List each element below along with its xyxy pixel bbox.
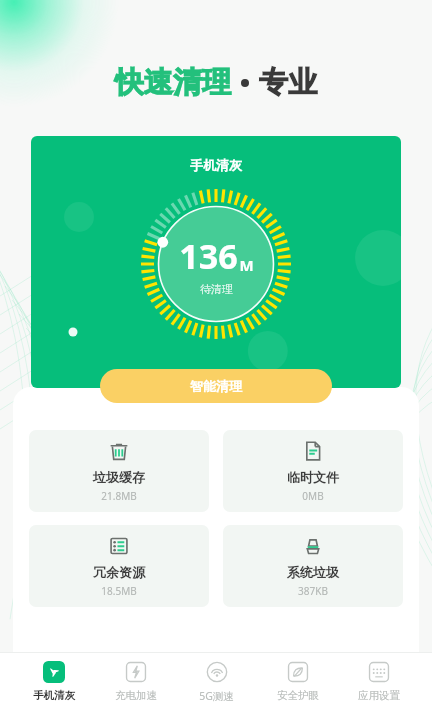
button[interactable]: 5G测速 — [176, 653, 257, 703]
staticText: 387KB — [298, 584, 328, 598]
staticText: M — [239, 255, 254, 275]
button[interactable]: 垃圾缓存 — [29, 430, 209, 512]
other: 充电加速 — [125, 661, 147, 683]
staticText: 21.8MB — [101, 489, 137, 503]
staticText: 专业 — [259, 64, 317, 101]
staticText: 垃圾缓存 — [93, 469, 145, 485]
staticText: 应用设置 — [358, 689, 400, 702]
staticText: 0MB — [302, 489, 324, 503]
staticText: 系统垃圾 — [287, 564, 339, 580]
staticText: 充电加速 — [115, 689, 157, 702]
staticText: 智能清理 — [190, 378, 242, 394]
button[interactable]: 智能清理 — [100, 369, 332, 403]
button[interactable]: 冗余资源 — [29, 525, 209, 607]
staticText: 快速清理 — [115, 64, 231, 101]
staticText: 临时文件 — [287, 469, 339, 485]
other: 安全护眼 — [287, 661, 309, 683]
button[interactable]: 手机清灰 — [13, 653, 95, 702]
staticText: 待清理 — [200, 282, 233, 296]
other: 5G测速 — [206, 661, 228, 683]
other: 应用设置 — [368, 661, 390, 683]
staticText: 冗余资源 — [93, 564, 145, 580]
button[interactable]: 临时文件 — [223, 430, 403, 512]
button[interactable]: 安全护眼 — [257, 653, 338, 702]
button[interactable]: 应用设置 — [338, 653, 419, 702]
staticText: 136 — [179, 233, 238, 279]
other: 手机清灰 — [43, 661, 65, 683]
staticText: 手机清灰 — [33, 689, 75, 702]
button[interactable]: 充电加速 — [95, 653, 176, 702]
button[interactable]: 系统垃圾 — [223, 525, 403, 607]
staticText: 手机清灰 — [31, 157, 401, 173]
staticText: 安全护眼 — [277, 689, 319, 702]
staticText: 5G测速 — [199, 689, 234, 703]
staticText: 18.5MB — [101, 584, 137, 598]
